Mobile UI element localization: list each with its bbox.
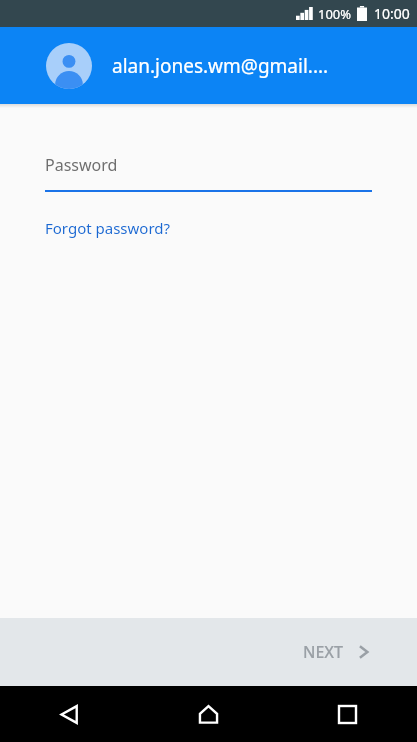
button[interactable]: Home (139, 686, 278, 742)
staticText: 100% (318, 5, 352, 23)
button[interactable]: alan.jones.wm@gmail.... (0, 27, 417, 104)
staticText: NEXT (303, 641, 344, 663)
staticText: Forgot password? (45, 218, 171, 238)
button[interactable]: Forgot password? (45, 218, 171, 238)
staticText: alan.jones.wm@gmail.... (112, 53, 329, 79)
staticText: 10:00 (374, 4, 410, 23)
staticText: Password (45, 154, 118, 176)
button[interactable]: Recents (278, 686, 417, 742)
button[interactable]: Password (45, 154, 372, 192)
button[interactable]: NEXT (295, 631, 379, 673)
button[interactable]: Back (0, 686, 139, 742)
